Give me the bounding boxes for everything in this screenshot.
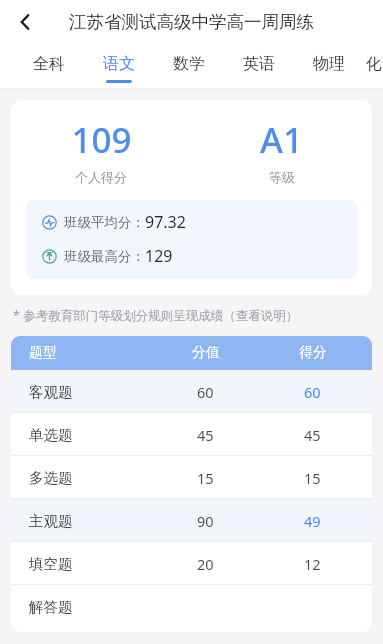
- staticText: 45: [304, 425, 321, 445]
- staticText: 单选题: [29, 426, 73, 444]
- button[interactable]: 全科: [14, 44, 84, 89]
- staticText: 20: [197, 554, 214, 574]
- staticText: 129: [145, 245, 173, 267]
- button[interactable]: 物理: [294, 44, 364, 89]
- staticText: 物理: [313, 54, 345, 74]
- staticText: 班级平均分：: [64, 214, 145, 231]
- staticText: 个人得分: [75, 169, 127, 185]
- staticText: 班级最高分：: [64, 248, 145, 265]
- staticText: 等级: [269, 169, 295, 185]
- staticText: 题型: [29, 344, 57, 362]
- staticText: 化: [366, 54, 382, 74]
- staticText: 45: [197, 425, 214, 445]
- staticText: 109: [71, 116, 132, 164]
- button[interactable]: Back: [6, 3, 44, 41]
- staticText: 江苏省测试高级中学高一周周练: [69, 11, 314, 33]
- button[interactable]: 客观题: [11, 370, 372, 413]
- staticText: 90: [197, 511, 214, 531]
- button[interactable]: 主观题: [11, 499, 372, 542]
- staticText: 客观题: [29, 383, 73, 401]
- staticText: 多选题: [29, 469, 73, 487]
- button[interactable]: 英语: [224, 44, 294, 89]
- staticText: 分值: [192, 344, 220, 362]
- button[interactable]: 数学: [154, 44, 224, 89]
- button[interactable]: * 参考教育部门等级划分规则呈现成绩（查看说明）: [13, 307, 383, 324]
- staticText: A1: [260, 116, 303, 164]
- staticText: 12: [304, 554, 321, 574]
- staticText: 15: [304, 468, 321, 488]
- button[interactable]: 化: [364, 44, 383, 89]
- staticText: 语文: [103, 54, 135, 74]
- staticText: 主观题: [29, 512, 73, 530]
- staticText: 填空题: [29, 555, 73, 573]
- staticText: 英语: [243, 54, 275, 74]
- staticText: 数学: [173, 54, 205, 74]
- staticText: 97.32: [145, 211, 186, 233]
- staticText: 60: [197, 382, 214, 402]
- staticText: 60: [304, 382, 321, 402]
- button[interactable]: 解答题: [11, 585, 372, 628]
- staticText: 49: [304, 511, 321, 531]
- button[interactable]: 多选题: [11, 456, 372, 499]
- staticText: * 参考教育部门等级划分规则呈现成绩（查看说明）: [13, 307, 299, 324]
- staticText: 得分: [299, 344, 327, 362]
- button[interactable]: 填空题: [11, 542, 372, 585]
- staticText: 15: [197, 468, 214, 488]
- button[interactable]: 语文: [84, 44, 154, 89]
- staticText: 全科: [33, 54, 65, 74]
- button[interactable]: 单选题: [11, 413, 372, 456]
- staticText: 解答题: [29, 598, 73, 616]
